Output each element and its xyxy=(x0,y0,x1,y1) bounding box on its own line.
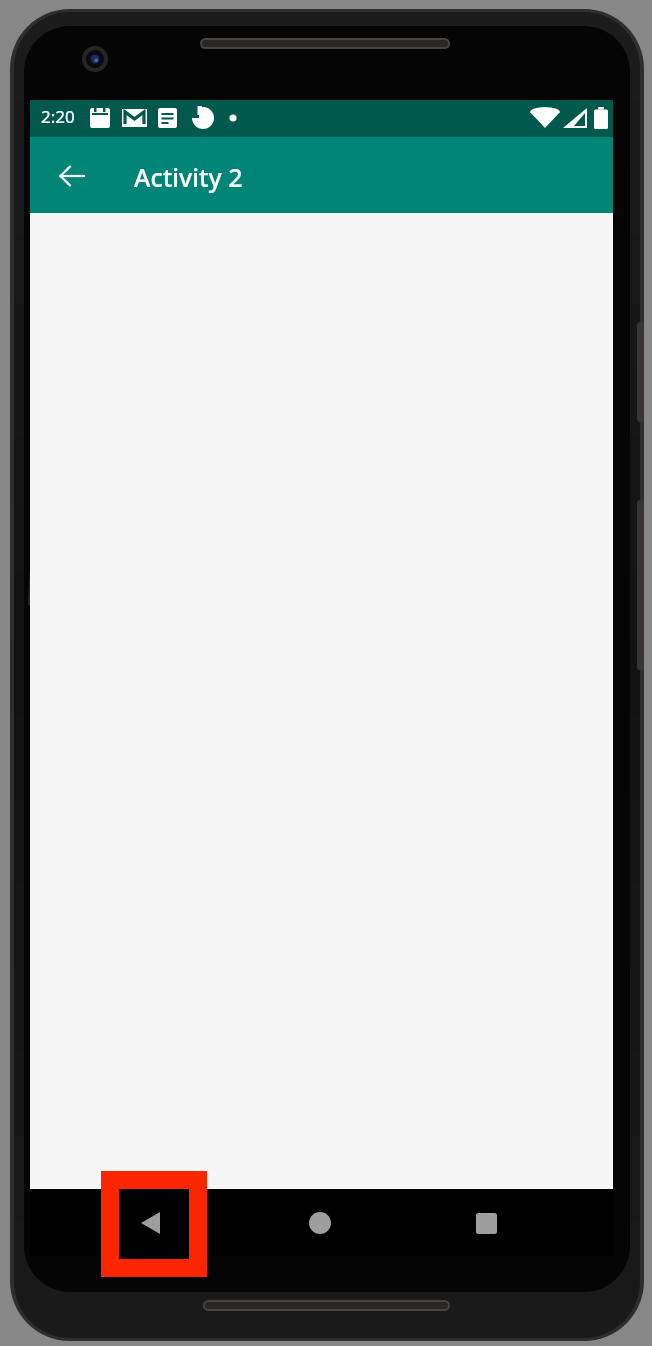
staticText: 2:20 xyxy=(41,105,75,128)
button[interactable]: Recent apps xyxy=(447,1189,527,1256)
staticText: Activity 2 xyxy=(134,160,243,194)
button[interactable]: Home xyxy=(280,1189,360,1256)
button[interactable]: Back xyxy=(112,1189,192,1256)
button[interactable]: Navigate up xyxy=(44,148,100,204)
